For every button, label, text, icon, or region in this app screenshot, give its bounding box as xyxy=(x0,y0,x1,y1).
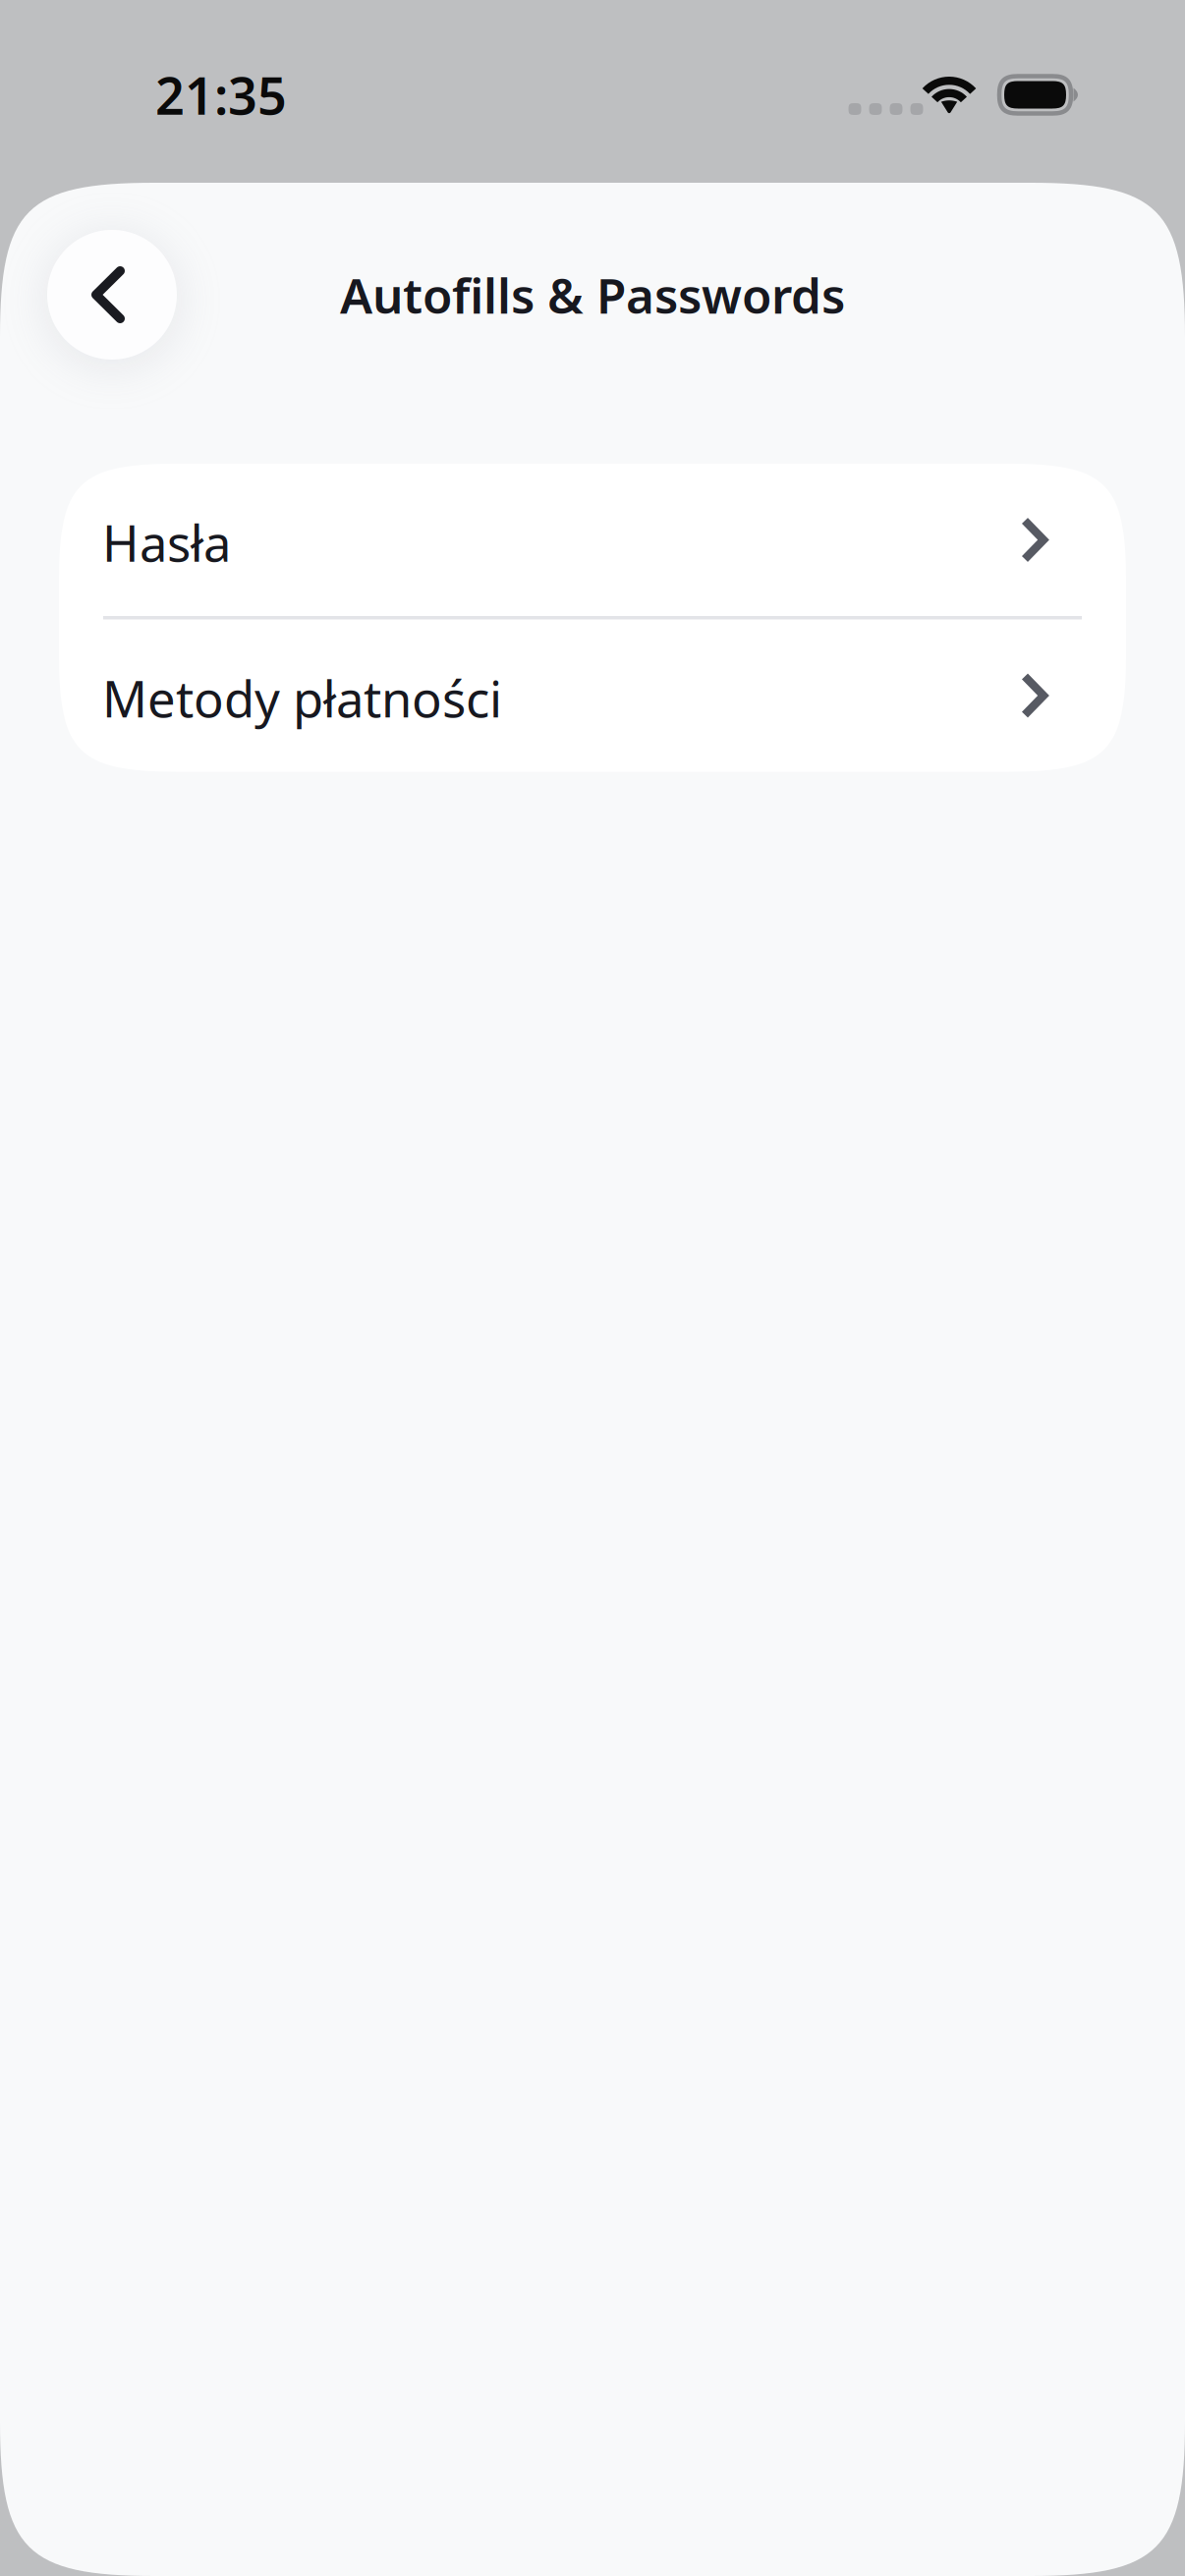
staticText: 21:35 xyxy=(155,61,287,129)
button[interactable]: Metody płatności xyxy=(59,619,1126,772)
button[interactable]: Hasła xyxy=(59,464,1126,616)
staticText: Autofills & Passwords xyxy=(340,263,845,327)
staticText: Hasła xyxy=(102,509,231,575)
button[interactable]: Back xyxy=(47,230,177,360)
staticText: Metody płatności xyxy=(102,665,502,731)
staticText xyxy=(1032,80,1038,110)
